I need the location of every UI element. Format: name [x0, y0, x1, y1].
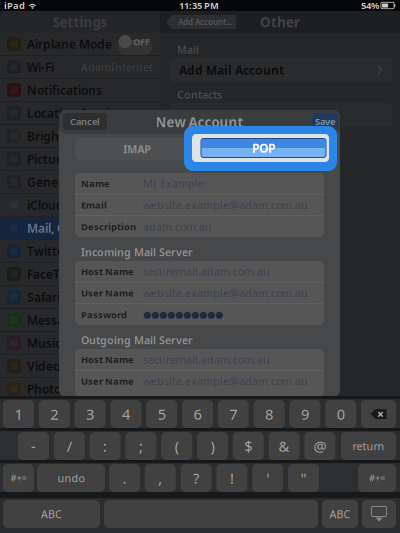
button[interactable]: Host Name: [75, 261, 324, 282]
button[interactable]: ;: [125, 432, 156, 460]
button[interactable]: Safari: [0, 286, 160, 309]
staticText: website.example@adam.com.au: [143, 198, 308, 212]
button[interactable]: Music: [0, 332, 160, 355]
staticText: POP: [252, 140, 275, 156]
button[interactable]: Hide keyboard: [362, 500, 396, 528]
button[interactable]: ABC: [3, 500, 100, 528]
button[interactable]: 0: [325, 400, 356, 428]
button[interactable]: 9: [289, 400, 320, 428]
staticText: Mail, Contacts: [27, 220, 109, 236]
staticText: return: [352, 439, 384, 453]
button[interactable]: Cancel: [63, 113, 107, 130]
staticText: Password: [81, 308, 127, 321]
staticText: 4: [122, 404, 130, 424]
button[interactable]: Password: [75, 304, 324, 325]
staticText: AdamInternet: [81, 60, 153, 74]
staticText: securemail.adam.com.au: [143, 352, 270, 367]
staticText: 8: [265, 404, 273, 424]
button[interactable]: 3: [75, 400, 106, 428]
button[interactable]: iCloud: [0, 194, 160, 217]
staticText: Outgoing Mail Server: [81, 333, 193, 347]
button[interactable]: ": [288, 464, 319, 492]
staticText: 54%: [361, 0, 379, 12]
button[interactable]: 4: [110, 400, 141, 428]
button[interactable]: return: [341, 432, 396, 460]
button[interactable]: :: [90, 432, 121, 460]
button[interactable]: Notifications: [0, 79, 160, 102]
button[interactable]: undo: [37, 464, 105, 492]
button[interactable]: General: [0, 171, 160, 194]
staticText: New Account: [155, 113, 243, 131]
staticText: Save: [315, 115, 335, 128]
staticText: General: [27, 174, 73, 190]
button[interactable]: 1: [3, 400, 34, 428]
button[interactable]: /: [54, 432, 85, 460]
staticText: &: [279, 436, 290, 456]
button[interactable]: Email: [75, 194, 324, 215]
button[interactable]: 8: [254, 400, 285, 428]
button[interactable]: 5: [146, 400, 177, 428]
staticText: Description: [81, 220, 136, 233]
button[interactable]: ABC: [322, 500, 358, 528]
button[interactable]: Save: [312, 113, 338, 130]
staticText: Messages: [27, 312, 85, 328]
button[interactable]: @: [304, 432, 335, 460]
button[interactable]: User Name: [75, 282, 324, 303]
staticText: Email: [81, 199, 107, 211]
staticText: #+=: [10, 472, 26, 484]
staticText: Incoming Mail Server: [81, 245, 193, 259]
staticText: Airplane Mode: [27, 36, 112, 52]
staticText: User Name: [81, 375, 134, 387]
staticText: website.example@adam.com.au: [143, 374, 308, 388]
button[interactable]: Twitter: [0, 240, 160, 263]
button[interactable]: -: [18, 432, 49, 460]
button[interactable]: (: [161, 432, 192, 460]
staticText: Add Mail Account: [179, 62, 284, 78]
button[interactable]: ,: [145, 464, 176, 492]
button[interactable]: #+=: [3, 464, 34, 492]
button[interactable]: Photos: [0, 378, 160, 401]
staticText: ,: [158, 468, 162, 488]
button[interactable]: Host Name: [75, 349, 324, 370]
button[interactable]: $: [233, 432, 264, 460]
button[interactable]: Picture Frame: [0, 148, 160, 171]
staticText: IMAP: [123, 142, 151, 156]
staticText: Host Name: [81, 353, 134, 366]
button[interactable]: #+=: [358, 464, 396, 492]
button[interactable]: Airplane Mode: [0, 33, 160, 56]
button[interactable]: ?: [181, 464, 212, 492]
button[interactable]: &: [269, 432, 300, 460]
staticText: adam.com.au: [143, 219, 212, 234]
button[interactable]: ): [197, 432, 228, 460]
button[interactable]: Brightness: [0, 125, 160, 148]
button[interactable]: ': [252, 464, 283, 492]
button[interactable]: .: [109, 464, 140, 492]
button[interactable]: Back to Add Account: [166, 15, 238, 29]
staticText: Contacts: [177, 87, 222, 102]
button[interactable]: Add Mail Account: [170, 58, 392, 82]
staticText: Brightness: [27, 128, 91, 144]
button[interactable]: Name: [75, 173, 324, 194]
button[interactable]: Messages: [0, 309, 160, 332]
button[interactable]: 7: [218, 400, 249, 428]
button[interactable]: User Name: [75, 371, 324, 392]
staticText: securemail.adam.com.au: [143, 264, 270, 278]
button[interactable]: 2: [39, 400, 70, 428]
button[interactable]: Video: [0, 355, 160, 378]
button[interactable]: Location Services: [0, 102, 160, 125]
button[interactable]: 6: [182, 400, 213, 428]
button[interactable]: Description: [75, 216, 324, 237]
staticText: /: [67, 436, 72, 456]
button[interactable]: Mail, Contacts: [0, 217, 160, 240]
staticText: iPad: [4, 0, 25, 12]
button[interactable]: Delete: [361, 400, 396, 428]
button[interactable]: Wi-Fi: [0, 56, 160, 79]
staticText: 5: [158, 404, 166, 424]
staticText: Settings: [52, 13, 107, 31]
button[interactable]: POP: [199, 138, 324, 160]
staticText: (: [175, 436, 179, 456]
button[interactable]: IMAP: [75, 138, 199, 160]
button[interactable]: FaceTime: [0, 263, 160, 286]
button[interactable]: !: [216, 464, 247, 492]
